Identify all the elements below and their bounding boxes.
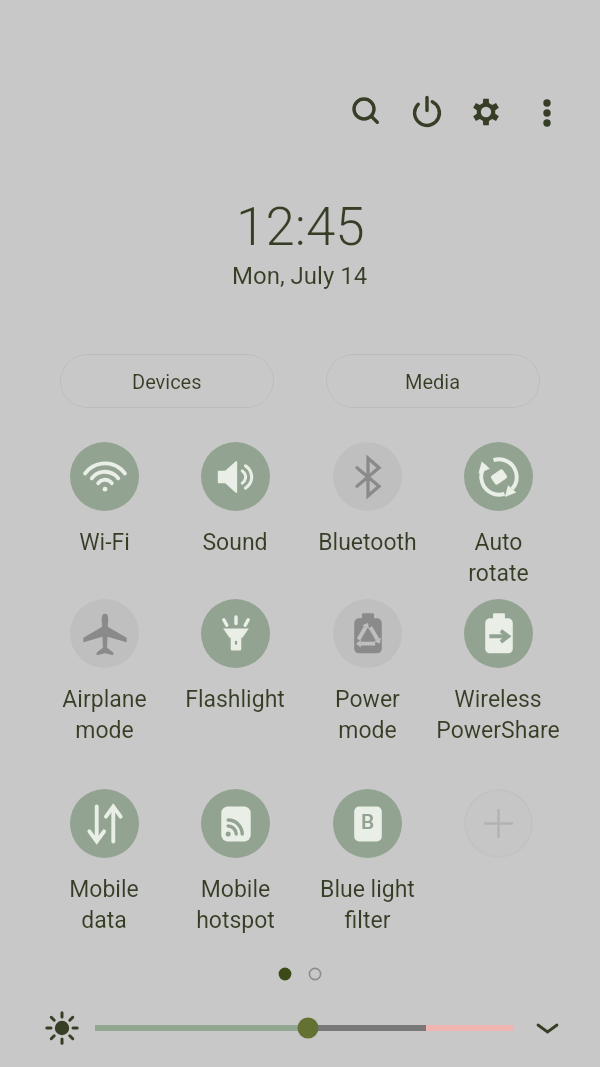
button[interactable]: Blue light filter	[333, 789, 402, 858]
button[interactable]: Devices	[60, 354, 274, 408]
staticText: Sound	[202, 529, 268, 556]
staticText: Mobile hotspot	[196, 876, 275, 933]
staticText: Mobile data	[69, 876, 139, 933]
staticText: 12:45	[236, 196, 365, 258]
staticText: B	[361, 810, 375, 835]
button[interactable]: Flashlight	[201, 599, 270, 668]
button[interactable]: Mobile hotspot	[201, 789, 270, 858]
staticText: Devices	[132, 370, 202, 393]
button[interactable]: Sound	[201, 442, 270, 511]
staticText: Blue light filter	[320, 876, 415, 933]
button[interactable]: Search	[339, 86, 391, 138]
button[interactable]: Power off	[401, 86, 453, 138]
button[interactable]: Power mode	[333, 599, 402, 668]
staticText: Power mode	[335, 686, 400, 743]
button[interactable]: Settings	[460, 86, 512, 138]
button[interactable]: Add	[464, 789, 533, 858]
staticText: Flashlight	[185, 686, 285, 713]
staticText: Wireless PowerShare	[436, 686, 560, 743]
button[interactable]: Page indicator	[0, 961, 600, 987]
button[interactable]: Wireless PowerShare	[464, 599, 533, 668]
button[interactable]: More options	[521, 86, 573, 138]
button[interactable]: Expand brightness settings	[520, 1005, 580, 1051]
staticText: Airplane mode	[62, 686, 147, 743]
button[interactable]: Mobile data	[70, 789, 139, 858]
staticText: Mon, July 14	[232, 262, 368, 290]
staticText: Wi-Fi	[79, 529, 130, 556]
staticText: Bluetooth	[318, 529, 417, 556]
button[interactable]: Media	[326, 354, 540, 408]
button[interactable]: Auto rotate	[464, 442, 533, 511]
staticText: Auto rotate	[468, 529, 529, 586]
button[interactable]: Airplane mode	[70, 599, 139, 668]
button[interactable]: Wi-Fi	[70, 442, 139, 511]
staticText: Media	[405, 370, 461, 393]
button[interactable]: Bluetooth	[333, 442, 402, 511]
